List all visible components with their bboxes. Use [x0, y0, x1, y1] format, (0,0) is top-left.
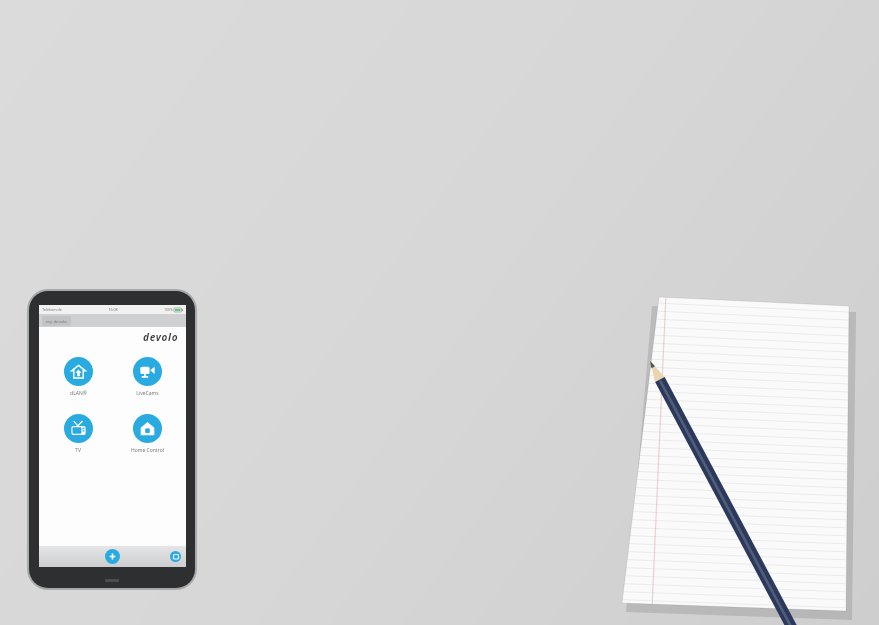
button[interactable]: Add device [105, 549, 120, 564]
staticText: Telekom.de [42, 307, 62, 312]
button[interactable]: Home Control [116, 414, 178, 454]
staticText: LiveCams [136, 390, 159, 397]
staticText: 16:08 [108, 307, 118, 312]
button[interactable]: TV [47, 414, 109, 454]
button[interactable]: Help [170, 551, 181, 562]
staticText: my devolo [46, 318, 67, 324]
staticText: 100% [164, 307, 173, 312]
staticText: Home Control [131, 447, 164, 454]
button[interactable]: LiveCams [116, 357, 178, 397]
staticText: devolo [143, 330, 179, 344]
button[interactable]: my devolo [46, 318, 67, 324]
staticText: dLAN® [70, 390, 87, 397]
button[interactable]: dLAN® [47, 357, 109, 397]
staticText: TV [75, 447, 81, 454]
